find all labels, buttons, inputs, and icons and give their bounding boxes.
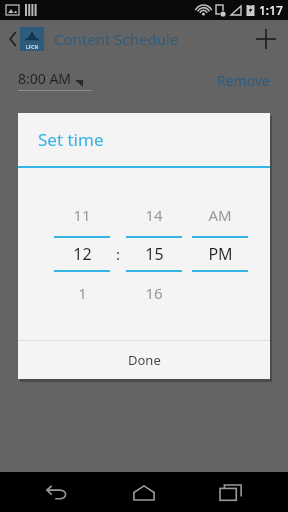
staticText: 11	[73, 205, 91, 225]
staticText: :	[116, 244, 121, 264]
button[interactable]: Remove	[217, 71, 270, 90]
button[interactable]: Navigate up	[0, 20, 52, 57]
staticText: Done	[128, 351, 161, 369]
staticText: 15	[145, 243, 164, 265]
staticText: 1	[78, 283, 87, 303]
button[interactable]: 1	[54, 278, 110, 308]
button[interactable]: Home	[114, 472, 174, 512]
button[interactable]: 15	[126, 238, 182, 270]
button[interactable]: Recents	[201, 472, 261, 512]
staticText: AM	[208, 205, 232, 225]
button[interactable]: 14	[126, 200, 182, 230]
button[interactable]: 16	[126, 278, 182, 308]
button[interactable]: AM	[192, 200, 248, 230]
button[interactable]: 11	[54, 200, 110, 230]
button[interactable]: Add	[244, 20, 288, 57]
button[interactable]: PM	[192, 238, 248, 270]
button[interactable]: Done	[18, 341, 270, 379]
staticText: 14	[145, 205, 163, 225]
staticText: LFCN	[26, 44, 39, 51]
button[interactable]: Back	[27, 472, 87, 512]
staticText: PM	[208, 243, 233, 265]
staticText: 8:00 AM	[18, 69, 72, 88]
staticText: Content Schedule	[54, 29, 179, 49]
staticText: Set time	[38, 128, 104, 151]
button[interactable]: 12	[54, 238, 110, 270]
button[interactable]: 8:00 AM	[18, 69, 92, 91]
staticText: Remove	[217, 71, 270, 90]
staticText: 16	[145, 283, 163, 303]
staticText: 1:17	[259, 2, 283, 18]
staticText: 12	[73, 243, 92, 265]
